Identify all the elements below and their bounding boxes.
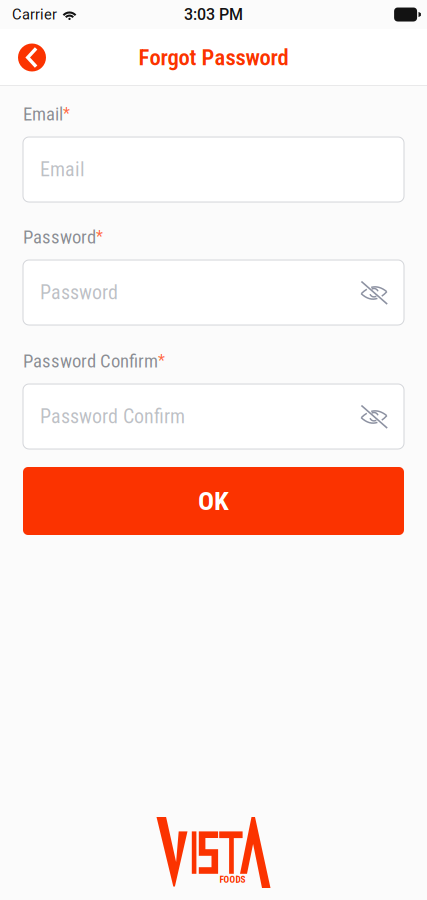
staticText: * xyxy=(63,104,70,123)
staticText: * xyxy=(96,227,103,246)
staticText: FOODS xyxy=(219,874,245,885)
staticText: Password Confirm xyxy=(40,405,185,428)
staticText: Password xyxy=(40,281,118,304)
button[interactable]: Toggle password visibility xyxy=(355,274,393,310)
staticText: Password xyxy=(23,226,96,248)
staticText: 3:03 PM xyxy=(184,5,243,24)
staticText: Email xyxy=(40,158,85,181)
staticText: Email xyxy=(23,103,63,125)
staticText: Forgot Password xyxy=(138,44,288,71)
button[interactable]: OK xyxy=(23,467,404,535)
button[interactable]: Back xyxy=(9,34,55,80)
staticText: Password Confirm xyxy=(23,350,158,372)
staticText: Carrier xyxy=(12,6,57,23)
button[interactable]: Toggle password visibility xyxy=(355,398,393,434)
staticText: OK xyxy=(198,485,229,517)
staticText: * xyxy=(158,351,165,370)
